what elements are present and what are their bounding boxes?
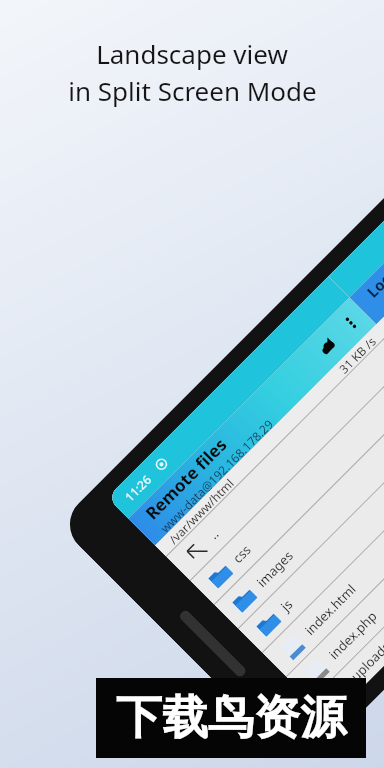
- button[interactable]: index.php: [287, 456, 384, 700]
- staticText: uploads: [347, 637, 384, 685]
- staticText: 31 KB /s: [335, 333, 378, 376]
- button[interactable]: uploads: [311, 480, 384, 720]
- button[interactable]: images: [214, 384, 384, 628]
- staticText: js: [277, 595, 296, 615]
- staticText: index.html: [301, 579, 360, 639]
- staticText: images: [253, 546, 297, 591]
- button[interactable]: Upload: [303, 323, 351, 371]
- staticText: Local files: [362, 234, 384, 302]
- staticText: 下载鸟资源: [116, 689, 346, 747]
- staticText: Remote files: [140, 433, 231, 524]
- button[interactable]: More options: [327, 299, 375, 347]
- staticText: ..: [205, 525, 222, 543]
- staticText: 4/22/20: [381, 374, 384, 413]
- button[interactable]: css: [190, 360, 384, 604]
- staticText: in Split Screen Mode: [68, 73, 317, 108]
- staticText: css: [229, 541, 255, 567]
- staticText: Landscape view: [96, 36, 288, 71]
- button[interactable]: js: [238, 408, 384, 652]
- button[interactable]: ..: [166, 336, 384, 580]
- staticText: index.php: [325, 607, 381, 663]
- staticText: www-data@192.168.178.29: [156, 415, 275, 534]
- staticText: 11:26: [121, 471, 154, 504]
- button[interactable]: index.html: [263, 432, 384, 676]
- staticText: /var/www/html: [165, 475, 236, 546]
